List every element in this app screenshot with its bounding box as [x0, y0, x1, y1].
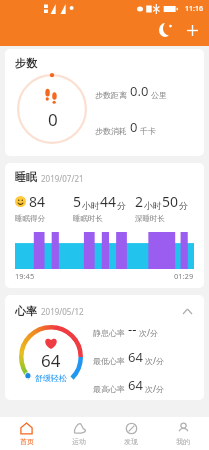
button[interactable]: 睡眠 — [5, 163, 204, 288]
button[interactable]: 首页 — [0, 417, 53, 450]
staticText: 公里 — [151, 90, 167, 100]
staticText: 64 — [128, 348, 143, 366]
button[interactable]: Sleep mode — [155, 19, 177, 41]
button[interactable]: 我的 — [157, 417, 209, 450]
staticText: 50 — [162, 192, 179, 211]
staticText: 步数消耗 — [95, 126, 127, 136]
staticText: 0 — [48, 108, 58, 131]
staticText: 步数距离 — [95, 90, 127, 100]
staticText: 舒缓轻松 — [35, 373, 67, 383]
staticText: 睡眠时长 — [73, 214, 103, 223]
staticText: 2019/05/12 — [41, 306, 84, 317]
button[interactable]: 发现 — [105, 417, 157, 450]
staticText: 首页 — [20, 437, 34, 446]
staticText: 次/分 — [145, 383, 165, 394]
button[interactable]: Add — [181, 19, 203, 41]
staticText: 64 — [128, 376, 143, 394]
staticText: 发现 — [124, 437, 138, 446]
staticText: 次/分 — [145, 355, 165, 366]
staticText: 19:45 — [15, 271, 35, 281]
staticText: 小时 — [144, 200, 162, 211]
button[interactable]: 运动 — [53, 417, 105, 450]
staticText: 0.0 — [130, 82, 149, 100]
staticText: 2 — [135, 192, 144, 211]
staticText: 步数 — [15, 56, 37, 70]
button[interactable]: Collapse — [178, 302, 196, 320]
staticText: 01:29 — [174, 271, 194, 281]
staticText: 千卡 — [140, 126, 156, 136]
staticText: 11:16 — [185, 4, 203, 14]
button[interactable]: 步数 — [5, 49, 204, 156]
staticText: 心率 — [15, 304, 37, 318]
staticText: 0 — [130, 118, 138, 136]
staticText: 84 — [29, 192, 46, 211]
staticText: 最低心率 — [93, 356, 125, 366]
staticText: 深睡时长 — [135, 214, 165, 223]
staticText: 睡眠得分 — [15, 214, 45, 223]
staticText: 5 — [73, 192, 82, 211]
staticText: 静息心率 — [93, 328, 125, 338]
staticText: 最高心率 — [93, 384, 125, 394]
button[interactable]: 心率 — [5, 295, 204, 400]
staticText: -- — [128, 320, 137, 338]
staticText: 睡眠 — [15, 170, 37, 184]
staticText: 44 — [100, 192, 117, 211]
staticText: 分 — [179, 200, 188, 211]
staticText: 分 — [117, 200, 126, 211]
staticText: 2019/07/21 — [41, 173, 84, 184]
staticText: 64 — [41, 349, 61, 372]
staticText: 次/分 — [139, 327, 159, 338]
staticText: 小时 — [82, 200, 100, 211]
staticText: 我的 — [176, 437, 190, 446]
staticText: 运动 — [72, 437, 86, 446]
